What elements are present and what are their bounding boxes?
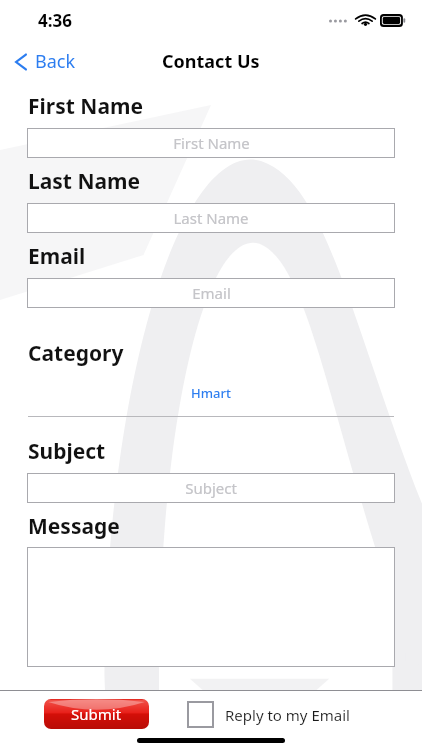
staticText: Hmart bbox=[28, 384, 394, 402]
staticText: Email bbox=[192, 283, 231, 303]
button[interactable]: Back bbox=[14, 49, 76, 74]
staticText: 4:36 bbox=[38, 9, 72, 32]
staticText: Message bbox=[28, 512, 120, 541]
staticText: Last Name bbox=[173, 208, 249, 228]
staticText: Back bbox=[35, 49, 76, 74]
button[interactable]: Email bbox=[27, 278, 395, 308]
button[interactable]: Last Name bbox=[27, 203, 395, 233]
staticText: Contact Us bbox=[162, 49, 260, 74]
staticText: Submit bbox=[71, 704, 122, 724]
staticText: First Name bbox=[173, 133, 250, 153]
staticText: Subject bbox=[185, 478, 237, 498]
button[interactable]: Reply to my Email checkbox bbox=[187, 701, 350, 728]
button[interactable]: Subject bbox=[27, 473, 395, 503]
other: Reply to my Email checkbox bbox=[187, 701, 214, 728]
staticText: Email bbox=[28, 242, 86, 271]
button[interactable]: Hmart bbox=[28, 384, 394, 417]
button[interactable] bbox=[27, 547, 395, 667]
button[interactable]: First Name bbox=[27, 128, 395, 158]
staticText: Subject bbox=[28, 437, 106, 466]
staticText: Last Name bbox=[28, 167, 141, 196]
staticText: First Name bbox=[28, 92, 143, 121]
staticText: Category bbox=[28, 339, 124, 368]
button[interactable]: Submit bbox=[44, 699, 149, 729]
staticText: Reply to my Email bbox=[225, 705, 350, 725]
